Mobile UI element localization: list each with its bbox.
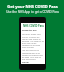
- staticText: Get your NHS COVID Pass: [7, 4, 58, 9]
- staticText: Travel: [22, 61, 29, 64]
- staticText: NHS COVID Pass: [23, 24, 44, 28]
- staticText: This pass shows your COVID-19 status for…: [22, 33, 44, 48]
- staticText: You will need to be registered with a GP…: [22, 49, 44, 60]
- staticText: Domestic use: [22, 29, 37, 32]
- staticText: Use the NHS App to get a COVID Pass: [6, 10, 59, 14]
